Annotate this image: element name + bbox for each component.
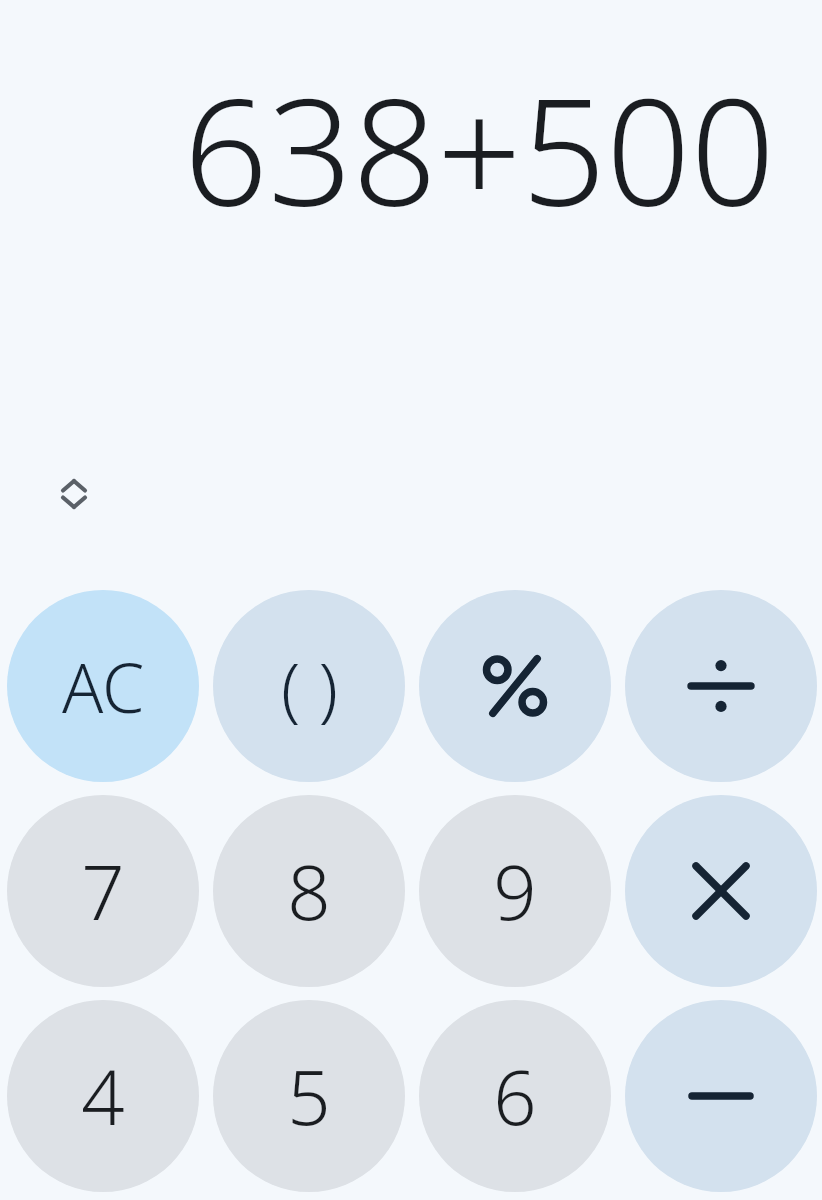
button[interactable]: Subtract [625,1000,817,1192]
staticText: 5 [287,1044,331,1148]
button[interactable]: 7 [7,795,199,987]
button[interactable]: 6 [419,1000,611,1192]
staticText: 9 [493,839,537,943]
staticText: 638+500 [183,48,775,218]
button[interactable]: ( ) [213,590,405,782]
button[interactable]: 8 [213,795,405,987]
button[interactable]: 9 [419,795,611,987]
button[interactable]: Percent [419,590,611,782]
button[interactable]: 5 [213,1000,405,1192]
staticText: ( ) [281,639,338,734]
staticText: 4 [81,1044,125,1148]
staticText: 7 [81,839,125,943]
button[interactable]: 4 [7,1000,199,1192]
button[interactable]: Expand [46,466,102,522]
staticText: 6 [493,1044,537,1148]
button[interactable]: Multiply [625,795,817,987]
staticText: 8 [287,839,331,943]
button[interactable]: Divide [625,590,817,782]
staticText: AC [62,640,145,733]
button[interactable]: AC [7,590,199,782]
